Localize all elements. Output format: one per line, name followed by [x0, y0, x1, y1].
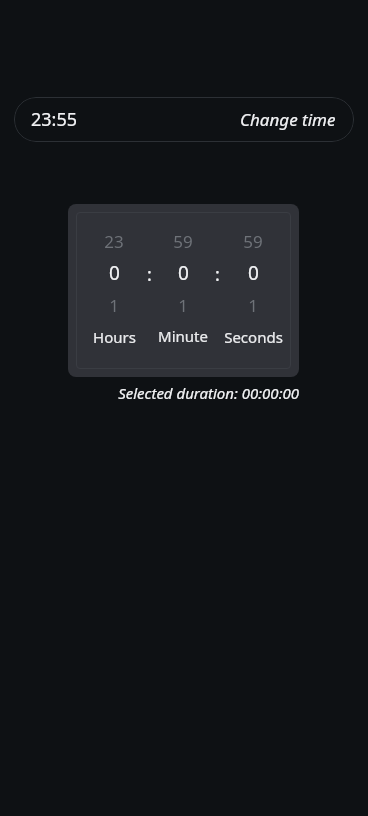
button[interactable]: 59 [155, 226, 211, 348]
staticText: 23:55 [31, 107, 78, 132]
staticText: Seconds [224, 327, 283, 347]
button[interactable]: 59 [223, 226, 283, 348]
button[interactable]: 23 [85, 226, 143, 348]
staticText: 59 [243, 230, 263, 253]
staticText: Change time [240, 108, 336, 131]
staticText: 1 [178, 294, 188, 317]
staticText: 0 [109, 260, 120, 286]
staticText: Minutes [155, 326, 211, 348]
button[interactable]: 23:55 [14, 97, 354, 142]
staticText: 0 [178, 260, 189, 286]
staticText: : [147, 262, 152, 287]
staticText: : [215, 262, 220, 287]
staticText: 0 [248, 260, 259, 286]
staticText: 1 [248, 294, 258, 317]
staticText: Selected duration: 00:00:00 [0, 383, 299, 403]
staticText: 1 [109, 294, 119, 317]
staticText: 59 [173, 230, 193, 253]
staticText: Hours [93, 327, 136, 347]
staticText: 23 [104, 230, 124, 253]
